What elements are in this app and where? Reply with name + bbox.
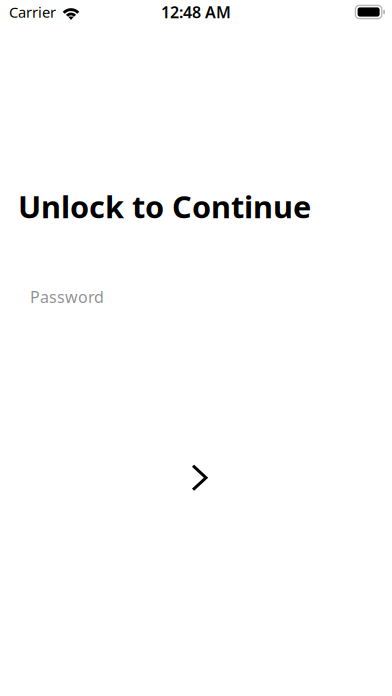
staticText: 12:48 AM [161,1,231,23]
button[interactable]: Continue [173,455,219,501]
staticText: Carrier [9,2,56,22]
button[interactable]: Password [0,282,392,312]
staticText: Password [30,286,104,307]
staticText: Unlock to Continue [18,186,311,227]
